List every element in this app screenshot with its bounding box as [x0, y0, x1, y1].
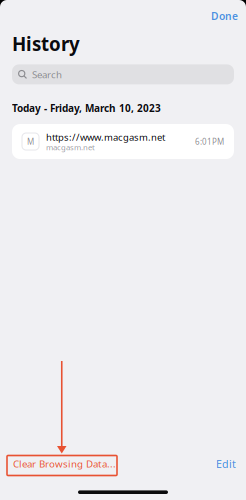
staticText: Clear Browsing Data...: [13, 457, 116, 470]
staticText: 6:01PM: [195, 136, 224, 147]
button[interactable]: M: [12, 124, 234, 159]
staticText: Edit: [216, 456, 236, 471]
button[interactable]: Clear Browsing Data...: [7, 452, 122, 475]
staticText: macgasm.net: [46, 142, 95, 152]
staticText: Search: [32, 68, 62, 81]
staticText: Today - Friday, March 10, 2023: [12, 101, 161, 115]
button[interactable]: Edit: [210, 451, 242, 476]
staticText: History: [12, 31, 80, 56]
button[interactable]: Done: [205, 5, 244, 27]
staticText: https://www.macgasm.net: [46, 131, 165, 143]
staticText: M: [27, 136, 34, 147]
staticText: Done: [211, 9, 238, 23]
